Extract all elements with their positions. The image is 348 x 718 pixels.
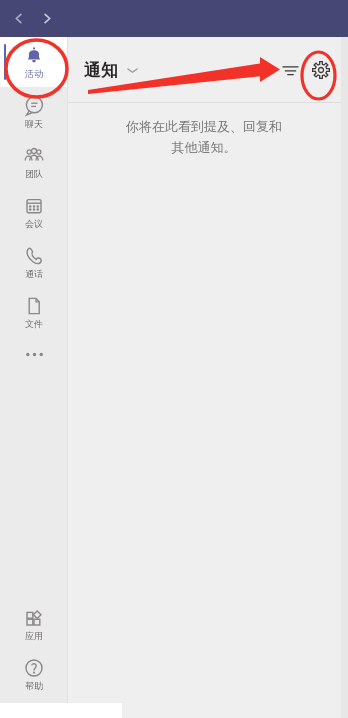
staticText: 团队 [25, 168, 43, 179]
button[interactable]: More options [0, 337, 68, 371]
staticText: 会议 [25, 218, 43, 229]
button[interactable]: 聊天 [0, 87, 68, 137]
button[interactable]: 会议 [0, 187, 68, 237]
button[interactable]: Back [7, 7, 30, 30]
button[interactable]: 团队 [0, 137, 68, 187]
button[interactable]: 帮助 [0, 649, 68, 699]
button[interactable]: 文件 [0, 287, 68, 337]
button[interactable]: 通话 [0, 237, 68, 287]
staticText: 通话 [25, 268, 43, 279]
staticText: 文件 [25, 318, 43, 329]
button[interactable]: 通知 [82, 56, 140, 85]
staticText: 应用 [25, 630, 43, 641]
staticText: 帮助 [25, 680, 43, 691]
staticText: 你将在此看到提及、回复和 其他通知。 [94, 118, 314, 156]
staticText: 活动 [25, 68, 43, 79]
button[interactable]: 应用 [0, 599, 68, 649]
staticText: 聊天 [25, 118, 43, 129]
button[interactable]: Filter [276, 56, 304, 84]
button[interactable]: Settings [306, 55, 336, 85]
button[interactable]: 活动 [0, 37, 68, 87]
staticText: 通知 [84, 60, 118, 81]
button[interactable]: Forward [36, 7, 59, 30]
